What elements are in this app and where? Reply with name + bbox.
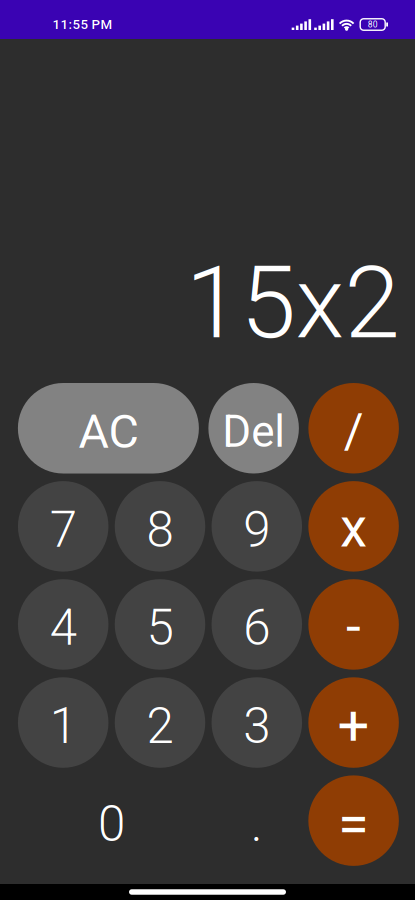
staticText: -: [346, 595, 361, 658]
button[interactable]: 0: [18, 775, 205, 866]
staticText: /: [344, 403, 364, 459]
button[interactable]: 8: [115, 481, 205, 572]
staticText: 11:55 PM: [52, 17, 112, 32]
button[interactable]: 6: [212, 579, 302, 670]
staticText: 2: [146, 697, 173, 755]
button[interactable]: Multiply: [308, 481, 399, 572]
button[interactable]: Plus: [308, 677, 399, 768]
button[interactable]: 3: [212, 677, 302, 768]
staticText: 4: [50, 599, 77, 657]
staticText: 6: [243, 599, 270, 657]
staticText: AC: [78, 404, 138, 459]
button[interactable]: Minus: [308, 579, 399, 670]
button[interactable]: 7: [18, 481, 108, 572]
staticText: 3: [243, 697, 270, 755]
staticText: +: [338, 693, 370, 759]
staticText: 80: [368, 19, 378, 30]
button[interactable]: 4: [18, 579, 108, 670]
staticText: Del: [222, 406, 285, 458]
button[interactable]: Divide: [308, 383, 399, 473]
staticText: 0: [98, 795, 125, 853]
staticText: 7: [50, 501, 77, 559]
button[interactable]: 9: [212, 481, 302, 572]
staticText: 8: [146, 501, 173, 559]
button[interactable]: Decimal point: [212, 775, 302, 866]
button[interactable]: 5: [115, 579, 205, 670]
button[interactable]: All clear: [18, 383, 199, 473]
staticText: 15x2: [185, 244, 399, 362]
button[interactable]: 1: [18, 677, 108, 768]
button[interactable]: Equals: [308, 775, 399, 866]
button[interactable]: 2: [115, 677, 205, 768]
staticText: 5: [146, 599, 173, 657]
staticText: x: [340, 496, 367, 560]
staticText: 1: [50, 697, 77, 755]
staticText: 9: [243, 501, 270, 559]
staticText: =: [338, 791, 369, 857]
button[interactable]: Delete: [208, 383, 299, 473]
staticText: .: [251, 795, 263, 853]
